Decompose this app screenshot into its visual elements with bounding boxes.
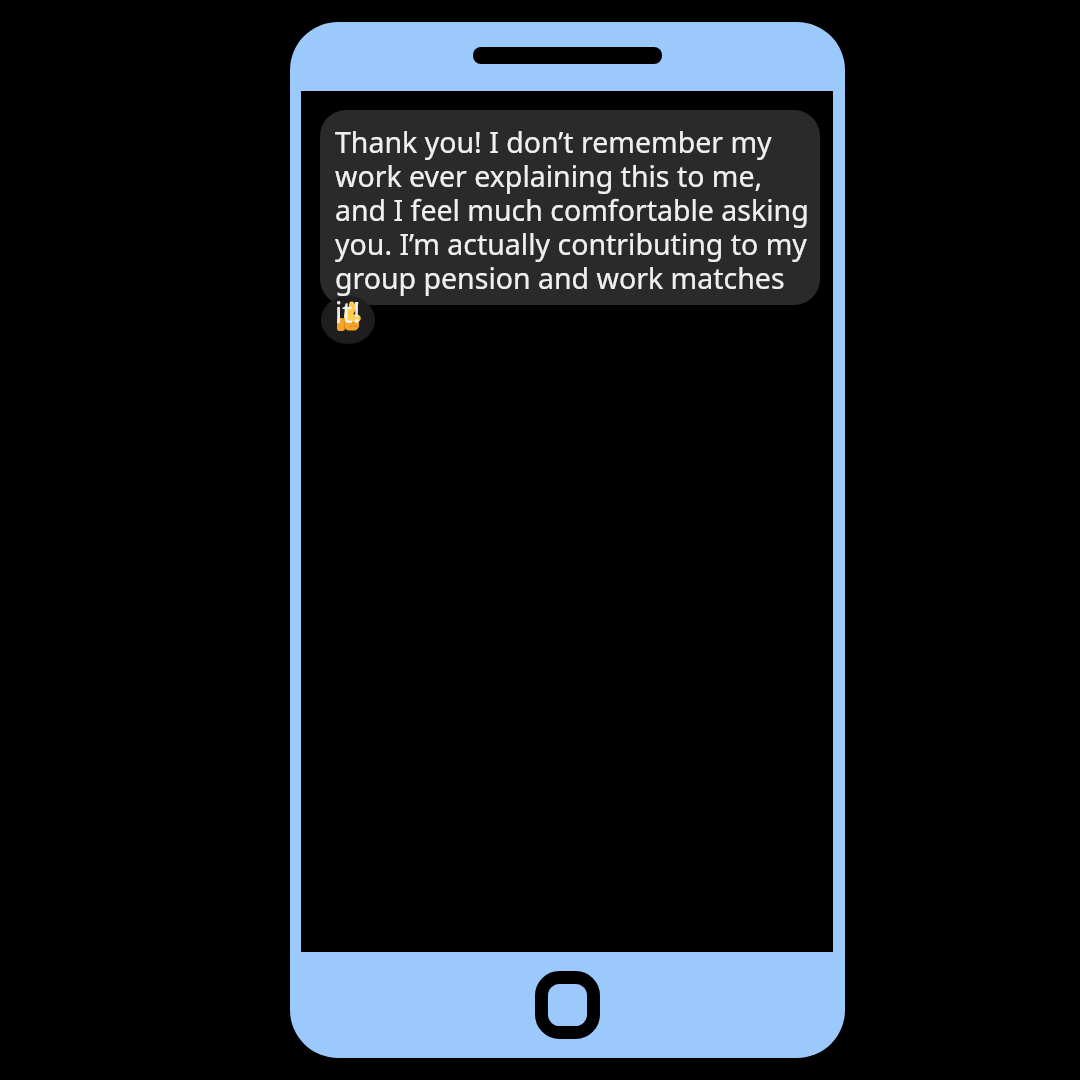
staticText: Thank you! I don’t remember my work ever… — [335, 123, 809, 331]
button[interactable] — [320, 110, 820, 305]
button[interactable]: Thumbs up reaction — [321, 296, 375, 344]
button[interactable]: Home — [535, 971, 600, 1039]
